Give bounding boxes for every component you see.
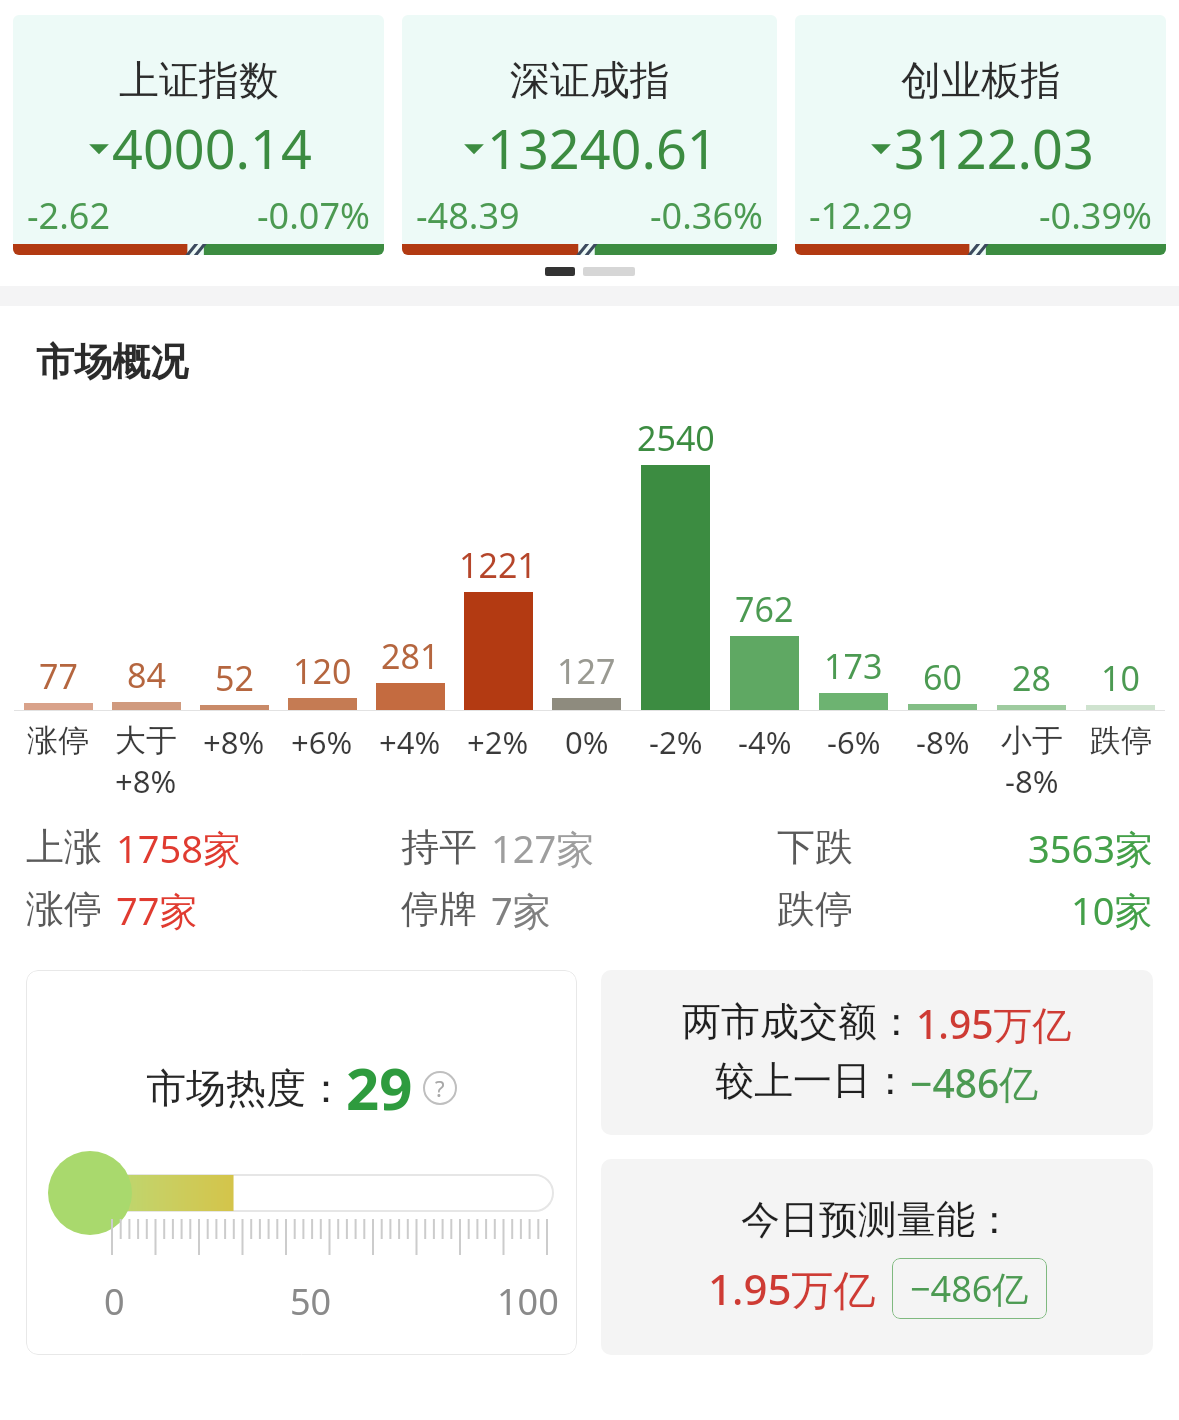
staticText: 涨停 [26, 885, 102, 933]
staticText: 77家 [116, 884, 198, 934]
staticText: 停牌 [401, 885, 477, 933]
staticText: 10 [1101, 655, 1140, 701]
button[interactable]: 市场热度： [26, 970, 577, 1355]
staticText: +8% [115, 760, 177, 802]
staticText: 跌停 [777, 885, 853, 933]
staticText: 10家 [1071, 884, 1153, 934]
staticText: 281 [381, 633, 440, 679]
staticText: −486亿 [910, 1264, 1029, 1313]
staticText: 大于 [115, 721, 177, 760]
staticText: 市场热度： [146, 1063, 346, 1113]
staticText: 上证指数 [119, 55, 279, 105]
staticText: 今日预测量能： [741, 1195, 1014, 1244]
staticText: -2% [649, 721, 703, 763]
staticText: 7家 [491, 884, 551, 934]
staticText: 小于 [1001, 721, 1063, 760]
button[interactable]: 深证成指 [402, 15, 777, 255]
staticText: +8% [203, 721, 265, 763]
button[interactable]: 上证指数 [13, 15, 384, 255]
staticText: +6% [291, 721, 353, 763]
staticText: 两市成交额： [682, 997, 916, 1046]
staticText: 3563家 [1028, 822, 1153, 872]
staticText: -8% [1005, 760, 1059, 802]
staticText: -48.39 [416, 191, 520, 240]
staticText: 13240.61 [487, 111, 718, 185]
staticText: -0.07% [257, 191, 370, 240]
button[interactable]: 今日预测量能： [601, 1159, 1153, 1355]
staticText: 52 [215, 655, 254, 701]
staticText: 60 [923, 654, 962, 700]
staticText: 下跌 [777, 823, 853, 871]
staticText: 762 [735, 586, 794, 632]
staticText: 1.95万亿 [708, 1260, 876, 1317]
staticText: 上涨 [26, 823, 102, 871]
staticText: 持平 [401, 823, 477, 871]
staticText: +2% [467, 721, 529, 763]
staticText: -0.36% [650, 191, 763, 240]
staticText: -0.39% [1039, 191, 1152, 240]
staticText: 77 [39, 653, 78, 699]
staticText: −486亿 [910, 1056, 1039, 1109]
staticText: 1221 [459, 542, 537, 588]
staticText: 127 [557, 648, 616, 694]
staticText: -12.29 [809, 191, 913, 240]
staticText: 28 [1012, 655, 1051, 701]
staticText: 84 [127, 652, 166, 698]
staticText: +4% [379, 721, 441, 763]
staticText: ? [435, 1073, 445, 1103]
staticText: 173 [824, 643, 883, 689]
staticText: 120 [293, 648, 352, 694]
staticText: -8% [916, 721, 970, 763]
staticText: 2540 [637, 415, 715, 461]
staticText: 较上一日： [715, 1056, 910, 1105]
staticText: 127家 [491, 822, 595, 872]
staticText: 1758家 [116, 822, 241, 872]
staticText: 100 [497, 1277, 559, 1326]
staticText: 0% [565, 721, 609, 763]
staticText: -6% [827, 721, 881, 763]
staticText: 3122.03 [894, 111, 1094, 185]
button[interactable]: 两市成交额： [601, 970, 1153, 1135]
staticText: 市场概况 [36, 338, 188, 386]
staticText: 跌停 [1090, 721, 1152, 760]
staticText: 深证成指 [510, 55, 670, 105]
staticText: 4000.14 [112, 111, 312, 185]
staticText: 0 [104, 1277, 125, 1326]
staticText: -2.62 [27, 191, 111, 240]
staticText: 1.95万亿 [916, 997, 1072, 1050]
button[interactable]: 创业板指 [795, 15, 1166, 255]
staticText: 29 [346, 1048, 413, 1127]
button[interactable]: 帮助 [423, 1071, 457, 1105]
staticText: 创业板指 [901, 55, 1061, 105]
staticText: -4% [738, 721, 792, 763]
staticText: 涨停 [27, 721, 89, 760]
staticText: 50 [290, 1277, 332, 1326]
